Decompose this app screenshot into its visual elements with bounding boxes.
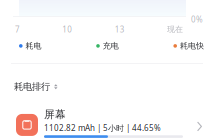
- button[interactable]: 屏幕: [16, 108, 202, 138]
- staticText: 耗电: [26, 41, 42, 51]
- staticText: 现在: [167, 24, 183, 34]
- staticText: 充电: [103, 41, 119, 51]
- button[interactable]: 耗电排行: [14, 81, 58, 92]
- staticText: 0%: [191, 14, 203, 25]
- staticText: 13: [115, 24, 125, 35]
- staticText: 耗电快: [180, 41, 204, 51]
- staticText: 10: [62, 24, 72, 35]
- staticText: 屏幕: [44, 108, 66, 121]
- staticText: 1102.82 mAh | 5小时 | 44.65%: [44, 123, 161, 133]
- staticText: 耗电排行: [14, 81, 50, 92]
- staticText: 7: [15, 24, 20, 35]
